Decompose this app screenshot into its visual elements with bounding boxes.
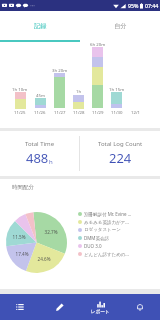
staticText: Total Log Count (98, 140, 143, 148)
staticText: 別冊解説付 Mr. Evine … (84, 211, 132, 217)
staticText: 11/30 (111, 109, 123, 115)
button[interactable]: DUO 3.0 (78, 242, 160, 250)
staticText: 11/26 (34, 109, 46, 115)
staticText: 11/29 (92, 109, 104, 115)
staticText: 95% (128, 2, 139, 9)
staticText: レポート (91, 309, 110, 315)
button[interactable]: 自分 (80, 11, 160, 40)
staticText: 45m (36, 92, 45, 98)
button[interactable]: みるみる英語力がア… (78, 218, 160, 226)
staticText: 自分 (114, 22, 127, 30)
staticText: 記録 (34, 22, 47, 30)
staticText: 32.7% (43, 229, 59, 235)
staticText: 488 (26, 149, 49, 167)
button[interactable]: 別冊解説付 Mr. Evine … (78, 210, 160, 218)
staticText: 11/25 (14, 109, 26, 115)
staticText: 1h 15m (109, 86, 125, 92)
staticText: 24.6% (36, 256, 52, 262)
staticText: 1h 10m (12, 86, 28, 92)
staticText: h (49, 158, 53, 166)
button[interactable]: Total Time (0, 131, 79, 176)
staticText: 12/1 (131, 109, 140, 115)
button[interactable]: Edit (40, 294, 80, 320)
staticText: みるみる英語力がア… (84, 219, 129, 225)
staticText: Total Time (25, 140, 55, 148)
staticText: 3h 20m (52, 67, 68, 73)
button[interactable]: DMM英会話 (78, 234, 160, 242)
staticText: 11/27 (54, 109, 66, 115)
staticText: 11/28 (73, 109, 85, 115)
button[interactable]: レポート (80, 294, 120, 320)
staticText: DMM英会話 (84, 235, 109, 241)
button[interactable]: List (0, 294, 40, 320)
staticText: 07:44 (145, 2, 159, 9)
staticText: 224 (109, 149, 132, 167)
button[interactable]: ロゼッタストーン (78, 226, 160, 234)
staticText: ロゼッタストーン (84, 227, 121, 233)
staticText: 1h (76, 88, 82, 94)
staticText: 時間配分 (12, 184, 34, 191)
staticText: 6h 20m (90, 41, 106, 47)
staticText: どんどん話すための… (84, 251, 129, 257)
button[interactable]: どんどん話すための… (78, 250, 160, 258)
staticText: 17.4% (14, 251, 30, 257)
staticText: DUO 3.0 (84, 243, 102, 249)
button[interactable]: Notifications (120, 294, 160, 320)
button[interactable]: 記録 (0, 11, 80, 40)
staticText: 11.5% (11, 234, 27, 240)
button[interactable]: Total Log Count (80, 131, 160, 176)
